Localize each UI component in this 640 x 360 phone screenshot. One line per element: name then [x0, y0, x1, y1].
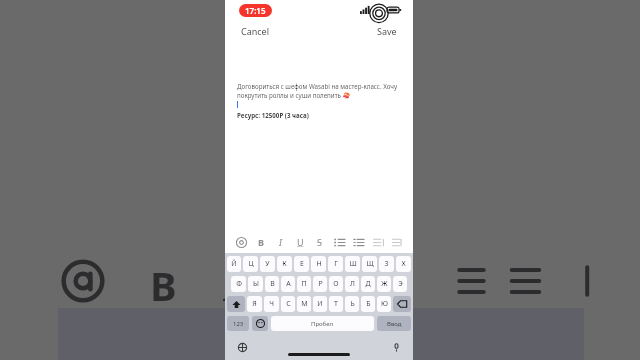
staticText: 17:15: [245, 5, 266, 16]
staticText: Ы: [253, 279, 259, 289]
staticText: У: [265, 259, 270, 269]
button[interactable]: Ь: [345, 296, 359, 312]
button[interactable]: Г: [328, 256, 343, 272]
button[interactable]: Д: [361, 276, 375, 292]
staticText: Р: [318, 279, 323, 289]
button[interactable]: Е: [294, 256, 309, 272]
button[interactable]: Ю: [377, 296, 391, 312]
button[interactable]: Decrease indent: [370, 234, 386, 250]
staticText: Л: [350, 279, 355, 289]
staticText: О: [333, 279, 339, 289]
button[interactable]: Х: [396, 256, 411, 272]
button[interactable]: Cancel: [235, 22, 276, 40]
staticText: I: [279, 236, 282, 248]
button[interactable]: Increase indent: [389, 234, 405, 250]
button[interactable]: У: [260, 256, 275, 272]
staticText: S: [317, 236, 322, 248]
button[interactable]: Ц: [243, 256, 258, 272]
button[interactable]: Bold: [253, 234, 269, 250]
button[interactable]: Щ: [362, 256, 377, 272]
button[interactable]: З: [379, 256, 394, 272]
staticText: Х: [401, 259, 406, 269]
staticText: Ц: [248, 259, 254, 269]
staticText: Договориться с шефом Wasabi на мастер-кл…: [237, 82, 403, 100]
staticText: К: [282, 259, 287, 269]
staticText: М: [301, 299, 308, 309]
button[interactable]: Change language: [235, 340, 249, 354]
button[interactable]: Bulleted list: [331, 234, 347, 250]
button[interactable]: Я: [247, 296, 262, 312]
button[interactable]: Ввод: [377, 316, 411, 331]
button[interactable]: Ш: [345, 256, 360, 272]
button[interactable]: Backspace: [393, 296, 411, 312]
button[interactable]: Й: [227, 256, 241, 272]
button[interactable]: Ж: [377, 276, 391, 292]
staticText: B: [150, 258, 177, 304]
staticText: I: [223, 258, 236, 304]
staticText: Ресурс: 12500Р (3 часа): [237, 111, 309, 119]
staticText: Cancel: [241, 25, 270, 37]
button[interactable]: Mention: [233, 234, 249, 250]
button[interactable]: Р: [313, 276, 327, 292]
staticText: Н: [316, 259, 322, 269]
button[interactable]: В: [265, 276, 279, 292]
staticText: Э: [398, 279, 403, 289]
button[interactable]: Shift: [227, 296, 245, 312]
staticText: B: [258, 236, 264, 248]
button[interactable]: Italic: [272, 234, 288, 250]
staticText: Save: [377, 25, 397, 37]
staticText: Ф: [236, 279, 242, 289]
button[interactable]: Пробел: [271, 316, 374, 331]
button[interactable]: О: [329, 276, 343, 292]
staticText: Ь: [350, 299, 355, 309]
staticText: Ввод: [387, 320, 402, 328]
staticText: Д: [365, 279, 371, 289]
button[interactable]: Ч: [264, 296, 279, 312]
staticText: Ю: [381, 299, 388, 309]
staticText: Щ: [366, 259, 374, 269]
staticText: Т: [334, 299, 338, 309]
button[interactable]: Underline: [292, 234, 308, 250]
staticText: Г: [334, 259, 338, 269]
button[interactable]: Т: [329, 296, 343, 312]
staticText: Я: [252, 299, 257, 309]
staticText: Й: [231, 259, 237, 269]
button[interactable]: Dictate: [389, 340, 403, 354]
staticText: П: [301, 279, 307, 289]
button[interactable]: К: [277, 256, 292, 272]
button[interactable]: 123: [227, 316, 249, 331]
button[interactable]: П: [297, 276, 311, 292]
staticText: Ж: [381, 279, 388, 289]
staticText: Ч: [269, 299, 274, 309]
staticText: З: [384, 259, 389, 269]
staticText: С: [286, 299, 291, 309]
staticText: В: [270, 279, 275, 289]
button[interactable]: Э: [393, 276, 407, 292]
button[interactable]: М: [297, 296, 311, 312]
button[interactable]: Б: [361, 296, 375, 312]
staticText: U: [297, 236, 304, 248]
button[interactable]: Ы: [248, 276, 263, 292]
button[interactable]: Н: [311, 256, 326, 272]
button[interactable]: А: [281, 276, 295, 292]
staticText: Е: [300, 259, 304, 269]
button[interactable]: Л: [345, 276, 359, 292]
button[interactable]: Emoji: [252, 316, 268, 331]
staticText: Ш: [349, 259, 357, 269]
staticText: И: [317, 299, 323, 309]
button[interactable]: Save: [371, 22, 403, 40]
button[interactable]: Ф: [231, 276, 246, 292]
button[interactable]: И: [313, 296, 327, 312]
button[interactable]: Numbered list: [350, 234, 366, 250]
staticText: А: [286, 279, 291, 289]
button[interactable]: Strikethrough: [311, 234, 327, 250]
staticText: Б: [366, 299, 371, 309]
staticText: 123: [233, 320, 244, 328]
button[interactable]: С: [281, 296, 295, 312]
staticText: Пробел: [311, 320, 334, 328]
